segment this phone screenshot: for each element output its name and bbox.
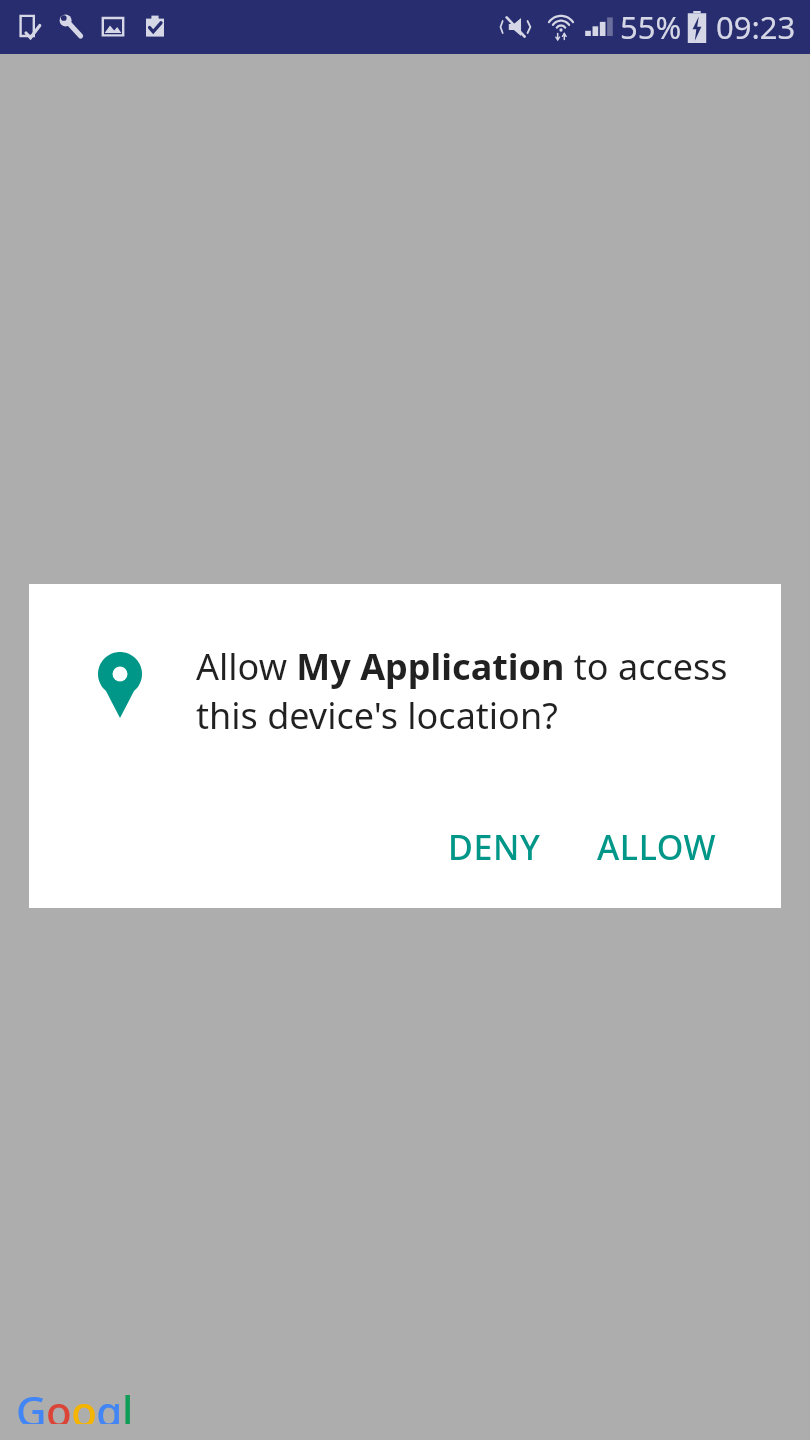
staticText: 09:23 bbox=[716, 6, 796, 48]
button[interactable]: DENY bbox=[430, 814, 559, 880]
staticText: DENY bbox=[448, 824, 541, 870]
staticText: Google bbox=[16, 1382, 140, 1424]
staticText: ALLOW bbox=[597, 824, 717, 870]
button[interactable]: ALLOW bbox=[579, 814, 735, 880]
staticText: 55% bbox=[620, 6, 682, 48]
staticText: Allow My Application to access this devi… bbox=[196, 642, 741, 739]
